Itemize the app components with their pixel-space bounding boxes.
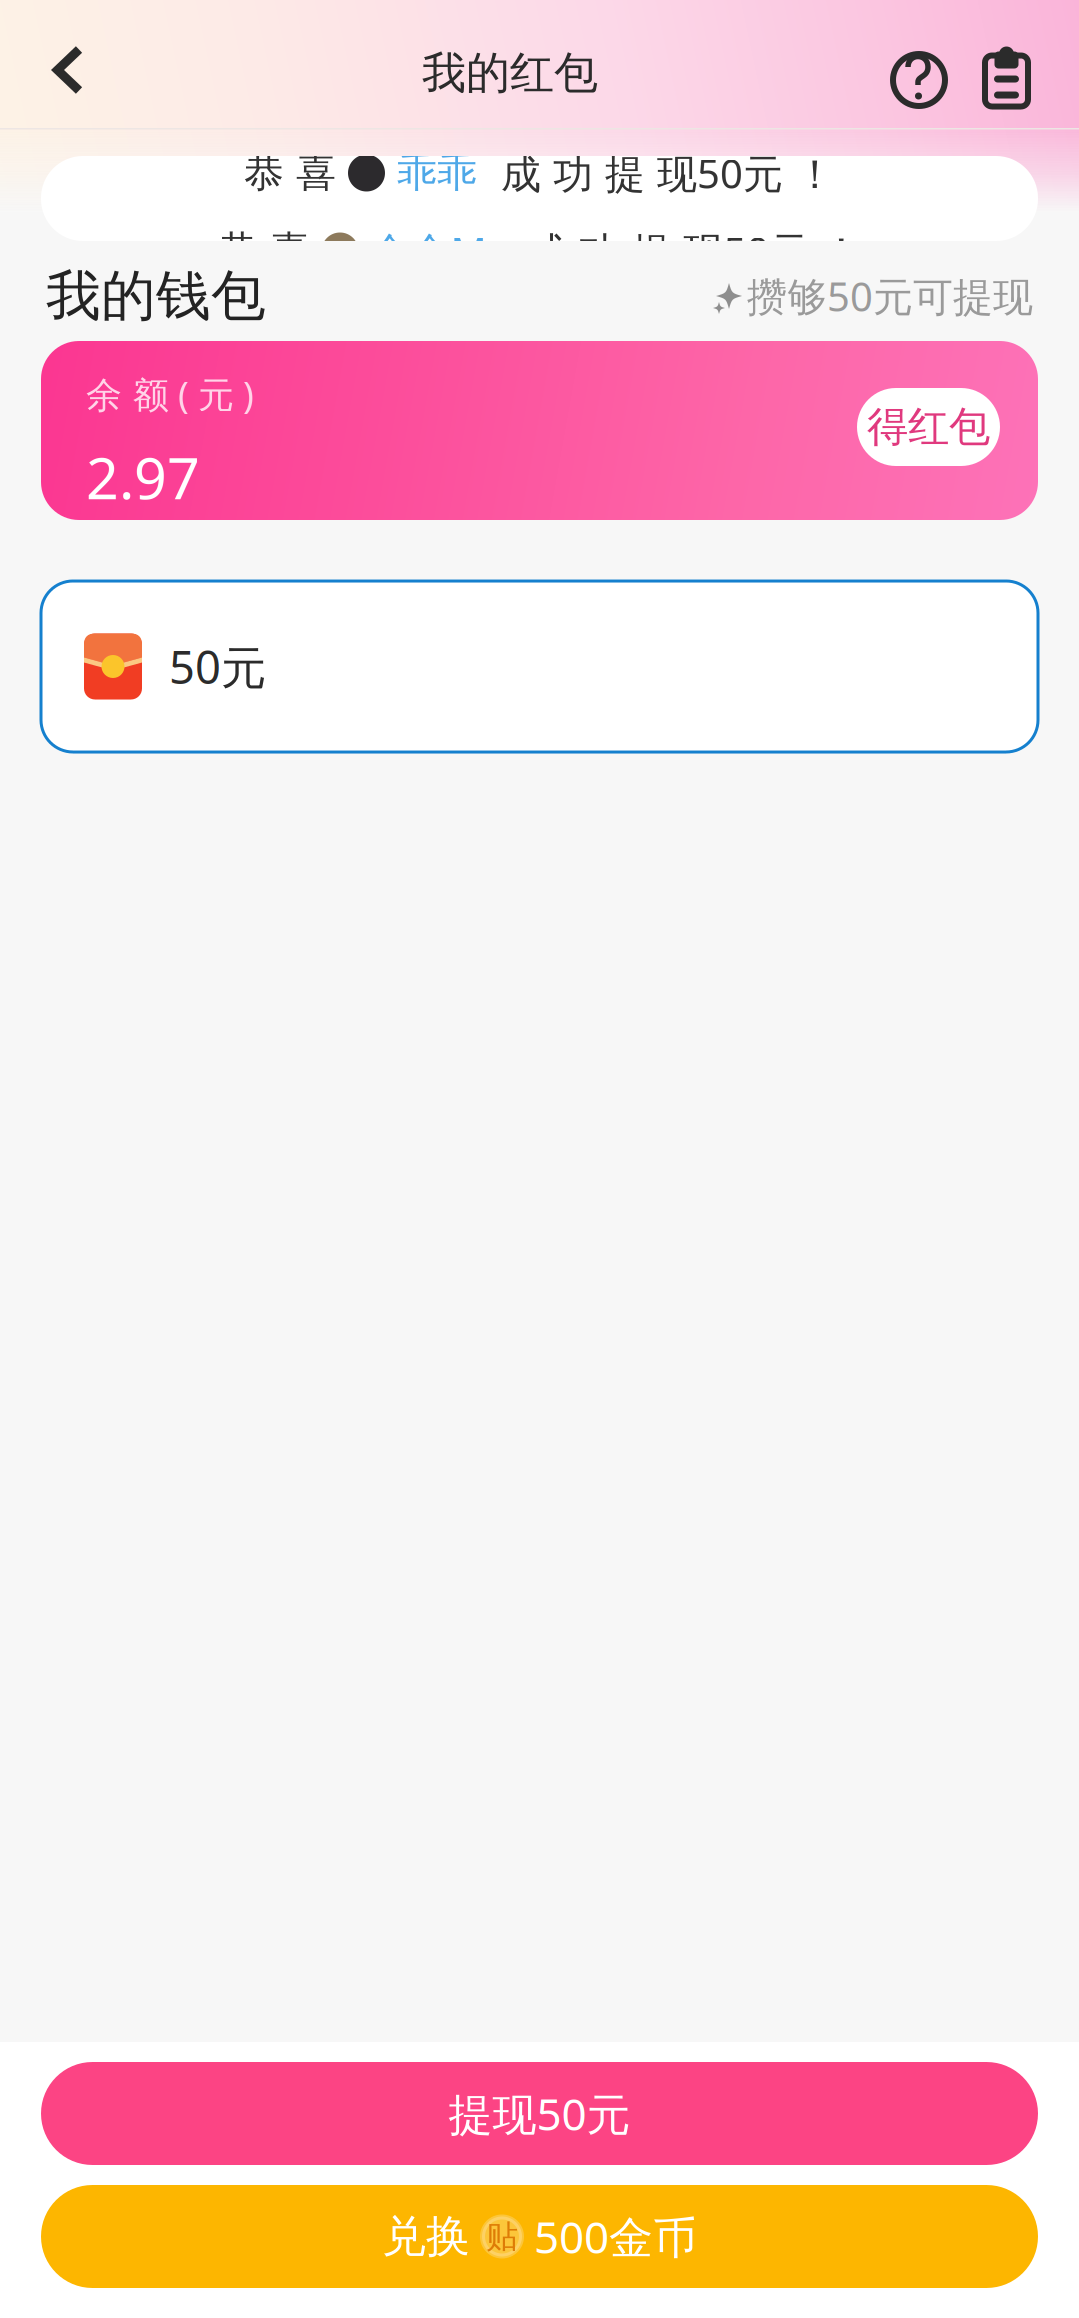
staticText: 攒够50元可提现 (747, 269, 1033, 322)
staticText: 恭 喜 (217, 226, 321, 275)
staticText: 乖乖 (385, 148, 489, 197)
button[interactable]: 返回 (0, 0, 110, 128)
staticText: 金金Ms (358, 224, 515, 277)
staticText: 500金币 (534, 2207, 697, 2266)
button[interactable]: 提现50元 (41, 2062, 1038, 2165)
button[interactable]: 帮助 (910, 0, 984, 128)
staticText: 2.97 (86, 439, 200, 515)
staticText: 成 功 提 现50元 ！ (489, 146, 835, 199)
staticText: 恭 喜 (244, 148, 348, 197)
staticText: 得红包 (867, 402, 990, 452)
button[interactable]: 50元 (41, 581, 1038, 752)
staticText: 50元 (169, 636, 266, 697)
button[interactable]: 得红包 (857, 388, 1000, 466)
staticText: 成 功 提 现50元 ！ (515, 224, 861, 277)
staticText: 我的红包 (422, 46, 598, 100)
staticText: 贴 (486, 2217, 518, 2256)
button[interactable]: 兑换 (41, 2185, 1038, 2288)
staticText: 兑换 (382, 2209, 470, 2263)
staticText: 余 额 ( 元 ) (86, 370, 254, 418)
button[interactable]: 提现记录 (984, 0, 1079, 128)
staticText: 我的钱包 (46, 262, 266, 329)
staticText: 提现50元 (448, 2084, 630, 2143)
